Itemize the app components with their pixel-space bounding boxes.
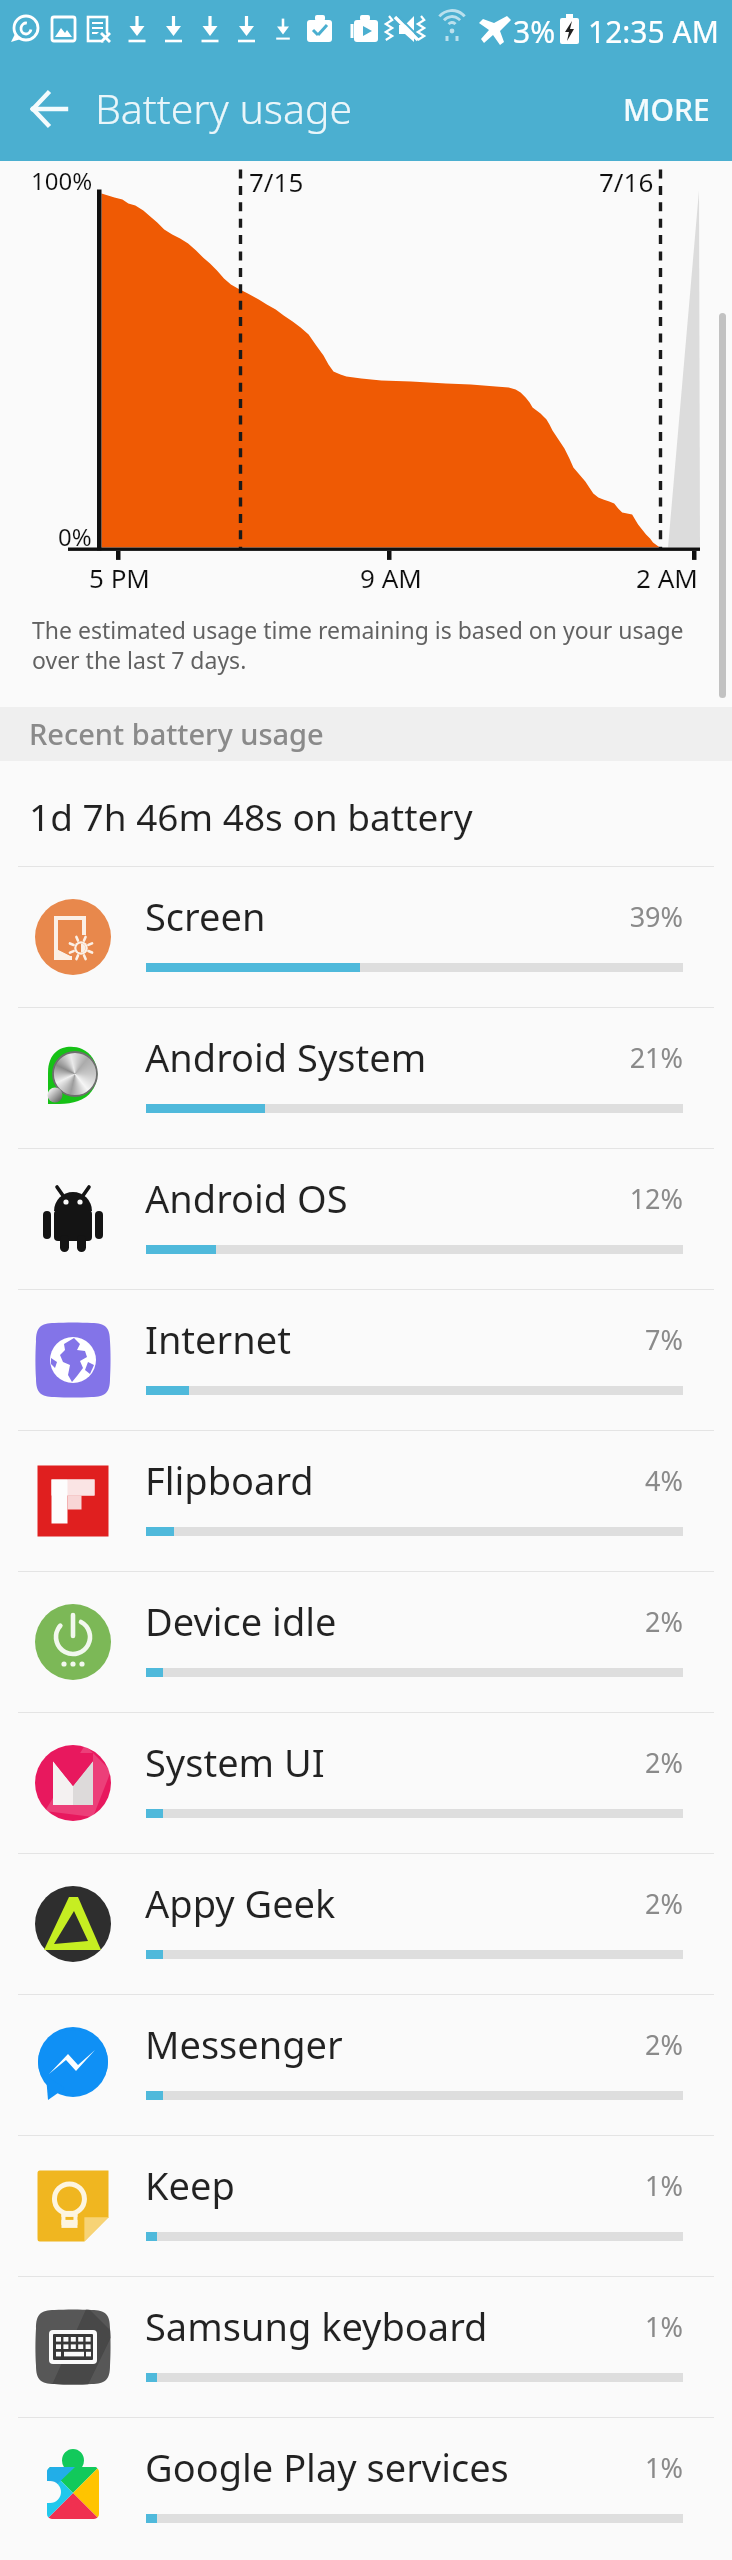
staticText: 2 AM [636, 560, 698, 595]
staticText: Battery usage [95, 80, 353, 136]
staticText: Internet [145, 1313, 291, 1365]
staticText: 7% [538, 1321, 683, 1358]
staticText: Google Play services [145, 2441, 509, 2493]
staticText: 3% [513, 11, 556, 52]
staticText: 12% [538, 1180, 683, 1217]
staticText: Keep [145, 2159, 235, 2211]
button[interactable]: MORE [599, 69, 732, 150]
staticText: 9 AM [360, 560, 422, 595]
staticText: 100% [31, 164, 93, 197]
button[interactable]: Android System [0, 1007, 732, 1148]
staticText: Screen [145, 890, 266, 942]
staticText: MORE [623, 89, 710, 130]
button[interactable]: Internet [0, 1289, 732, 1430]
button[interactable]: System UI [0, 1712, 732, 1853]
button[interactable]: Battery level history chart [0, 161, 732, 707]
staticText: System UI [145, 1736, 325, 1788]
staticText: 12:35 AM [588, 11, 719, 52]
staticText: 7/16 [599, 164, 654, 199]
button[interactable]: Device idle [0, 1571, 732, 1712]
staticText: 21% [538, 1039, 683, 1076]
staticText: Device idle [145, 1595, 337, 1647]
staticText: 0% [58, 520, 92, 553]
button[interactable]: Messenger [0, 1994, 732, 2135]
staticText: Samsung keyboard [145, 2300, 488, 2352]
staticText: 4% [538, 1462, 683, 1499]
staticText: Flipboard [145, 1454, 314, 1506]
button[interactable]: Keep [0, 2135, 732, 2276]
staticText: Messenger [145, 2018, 343, 2070]
staticText: Recent battery usage [29, 714, 324, 753]
staticText: 39% [538, 898, 683, 935]
button[interactable]: Android OS [0, 1148, 732, 1289]
staticText: 5 PM [89, 560, 150, 595]
staticText: 2% [538, 1603, 683, 1640]
staticText: 2% [538, 2026, 683, 2063]
button[interactable]: Navigate up [14, 74, 84, 144]
staticText: 2% [538, 1744, 683, 1781]
button[interactable]: Google Play services [0, 2417, 732, 2558]
staticText: 1d 7h 46m 48s on battery [29, 791, 473, 841]
button[interactable]: Samsung keyboard [0, 2276, 732, 2417]
button[interactable]: Screen [0, 866, 732, 1007]
staticText: Appy Geek [145, 1877, 336, 1929]
staticText: 1% [538, 2167, 683, 2204]
button[interactable]: Flipboard [0, 1430, 732, 1571]
staticText: 1% [538, 2449, 683, 2486]
staticText: Android System [145, 1031, 427, 1083]
button[interactable]: Appy Geek [0, 1853, 732, 1994]
staticText: 2% [538, 1885, 683, 1922]
staticText: Android OS [145, 1172, 348, 1224]
staticText: The estimated usage time remaining is ba… [32, 614, 696, 675]
staticText: 1% [538, 2308, 683, 2345]
staticText: 7/15 [249, 164, 304, 199]
